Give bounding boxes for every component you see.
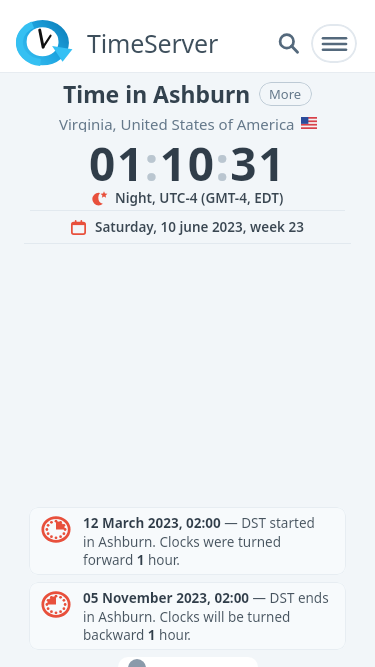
staticText: More	[269, 85, 302, 103]
button[interactable]: Open chat	[118, 657, 258, 667]
staticText: Time in Ashburn	[63, 78, 251, 109]
staticText: 05 November 2023, 02:00 — DST ends in As…	[83, 589, 330, 643]
staticText: Virginia, United States of America	[59, 114, 295, 132]
staticText: Saturday, 10 june 2023, week 23	[95, 218, 304, 236]
button[interactable]: 05 November 2023, 02:00 — DST ends in As…	[29, 582, 346, 650]
button[interactable]: Search	[267, 22, 309, 64]
staticText: TimeServer	[87, 26, 219, 60]
staticText: 01:10:31	[89, 132, 287, 185]
button[interactable]: Menu	[311, 24, 357, 63]
button[interactable]: TimeServer home	[15, 17, 73, 69]
button[interactable]: 12 March 2023, 02:00 — DST started in As…	[29, 507, 346, 575]
button[interactable]: More	[259, 82, 312, 106]
staticText: 12 March 2023, 02:00 — DST started in As…	[83, 514, 330, 568]
staticText: Night, UTC-4 (GMT-4, EDT)	[115, 189, 284, 207]
